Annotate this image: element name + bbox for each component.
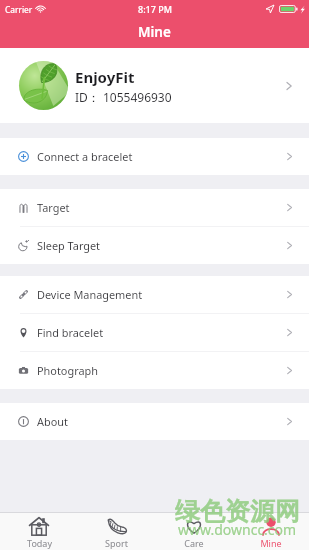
button[interactable]: EnjoyFit bbox=[0, 48, 309, 123]
button[interactable]: Sport bbox=[78, 513, 155, 550]
button[interactable]: Connect a bracelet bbox=[0, 138, 309, 175]
staticText: www.downcc.com bbox=[178, 520, 297, 539]
staticText: Photograph bbox=[37, 363, 98, 378]
staticText: About bbox=[37, 414, 68, 429]
staticText: Sport bbox=[105, 537, 128, 549]
staticText: 绿色资源网 bbox=[175, 496, 300, 527]
staticText: Today bbox=[27, 537, 52, 549]
button[interactable]: Care bbox=[155, 513, 232, 550]
staticText: Carrier bbox=[5, 4, 33, 15]
staticText: Connect a bracelet bbox=[37, 149, 133, 164]
button[interactable]: Today bbox=[0, 513, 78, 550]
button[interactable]: Device Management bbox=[0, 276, 309, 313]
button[interactable]: About bbox=[0, 403, 309, 440]
staticText: Device Management bbox=[37, 287, 143, 302]
button[interactable]: Photograph bbox=[0, 352, 309, 389]
staticText: Mine bbox=[260, 537, 282, 549]
staticText: Find bracelet bbox=[37, 325, 104, 340]
staticText: 8:17 PM bbox=[138, 3, 172, 15]
staticText: Sleep Target bbox=[37, 238, 101, 253]
staticText: ID： 1055496930 bbox=[75, 89, 172, 105]
staticText: Target bbox=[37, 200, 70, 215]
button[interactable]: Sleep Target bbox=[0, 227, 309, 264]
staticText: EnjoyFit bbox=[75, 67, 135, 87]
button[interactable]: Mine bbox=[232, 513, 309, 550]
staticText: Care bbox=[184, 537, 204, 549]
staticText: Mine bbox=[138, 23, 171, 41]
button[interactable]: Target bbox=[0, 189, 309, 226]
button[interactable]: Find bracelet bbox=[0, 314, 309, 351]
